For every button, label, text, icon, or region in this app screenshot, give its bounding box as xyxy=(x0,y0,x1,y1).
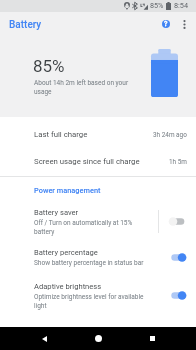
staticText: ? xyxy=(164,20,168,28)
staticText: Battery percentage xyxy=(34,248,98,257)
button[interactable]: Battery percentage xyxy=(163,243,193,271)
button[interactable]: Help xyxy=(156,14,176,34)
button[interactable]: Battery percentage xyxy=(0,243,196,271)
staticText: Show battery percentage in status bar xyxy=(34,259,144,267)
staticText: Screen usage since full charge xyxy=(34,157,140,166)
staticText: Adaptive brightness xyxy=(34,282,102,291)
staticText: Last full charge xyxy=(34,130,88,139)
button[interactable]: Last full charge xyxy=(0,121,196,148)
staticText: 85% xyxy=(33,56,65,76)
staticText: 8:54 xyxy=(174,1,189,10)
staticText: Power management xyxy=(34,186,101,195)
button[interactable]: Battery saver xyxy=(0,204,196,238)
staticText: 85% xyxy=(150,1,164,9)
button[interactable]: More options xyxy=(174,14,194,34)
staticText: 3h 24m ago xyxy=(153,131,187,139)
staticText: Off / Turn on automatically at 15% batte… xyxy=(34,219,145,235)
staticText: Battery xyxy=(9,19,42,31)
button[interactable]: Adaptive brightness xyxy=(0,278,196,312)
staticText: About 14h 2m left based on your usage xyxy=(34,79,146,96)
button[interactable]: Screen usage since full charge xyxy=(0,148,196,175)
staticText: Battery saver xyxy=(34,208,79,217)
button[interactable]: Back xyxy=(33,327,55,350)
button[interactable]: Adaptive brightness xyxy=(163,278,193,312)
button[interactable]: Battery saver xyxy=(163,204,193,238)
staticText: Optimize brightness level for available … xyxy=(34,293,145,309)
button[interactable]: Home xyxy=(87,327,109,350)
staticText: 1h 5m xyxy=(169,158,187,166)
button[interactable]: Recents xyxy=(141,327,163,350)
